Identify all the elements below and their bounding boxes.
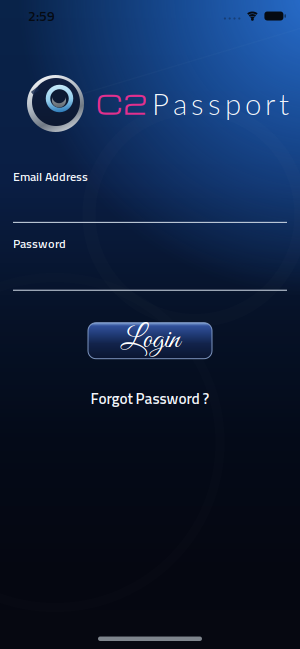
staticText: Password <box>13 234 66 253</box>
staticText: Login <box>120 321 179 359</box>
staticText: t <box>279 86 289 121</box>
staticText: s <box>191 86 204 121</box>
staticText: Email Address <box>13 167 88 186</box>
staticText: p <box>225 86 241 121</box>
staticText: r <box>265 86 275 121</box>
button[interactable]: Forgot Password ? <box>90 387 209 410</box>
button[interactable]: Login <box>88 323 212 359</box>
button[interactable]: Email Address <box>0 167 287 223</box>
staticText: Forgot Password ? <box>90 387 209 410</box>
staticText: o <box>245 86 261 121</box>
staticText: a <box>173 86 187 121</box>
staticText: s <box>208 86 221 121</box>
staticText: 2:59 <box>28 6 55 26</box>
staticText: C2 <box>96 85 147 121</box>
button[interactable]: Password <box>0 234 287 291</box>
staticText: P <box>152 86 169 121</box>
